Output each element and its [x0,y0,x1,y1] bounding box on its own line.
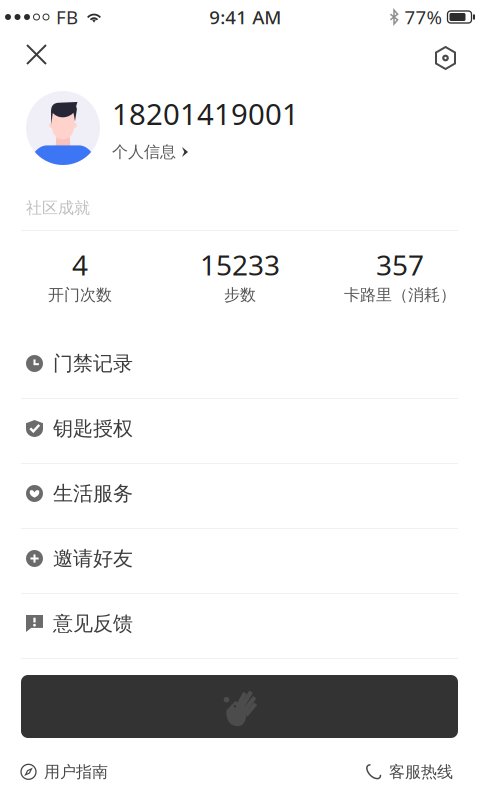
staticText: 357 [376,246,424,283]
staticText: 4 [72,246,88,283]
staticText: 个人信息 [112,142,176,162]
staticText: 生活服务 [53,481,133,506]
staticText: 门禁记录 [53,351,133,376]
button[interactable]: Settings [424,35,467,81]
staticText: 卡路里（消耗） [344,285,456,305]
staticText: 18201419001 [112,94,299,133]
staticText: 开门次数 [48,285,112,305]
button[interactable]: 18201419001 [26,89,480,167]
button[interactable]: 生活服务 [0,463,480,524]
staticText: 社区成就 [26,198,90,218]
staticText: 客服热线 [389,762,453,782]
button[interactable]: 用户指南 [17,752,112,792]
button[interactable]: 门禁记录 [0,333,480,394]
staticText: 邀请好友 [53,546,133,571]
staticText: FB [56,5,78,29]
staticText: 15233 [200,246,280,283]
staticText: 9:41 AM [209,5,281,29]
button[interactable]: 邀请好友 [0,528,480,589]
staticText: 用户指南 [44,762,108,782]
button[interactable]: 客服热线 [362,752,457,792]
staticText: 77% [404,5,442,29]
button[interactable]: Shake to open the door [21,675,458,738]
staticText: 意见反馈 [53,611,133,636]
button[interactable]: Close [15,33,58,76]
staticText: 步数 [224,285,256,305]
button[interactable]: 钥匙授权 [0,398,480,459]
staticText: 钥匙授权 [53,416,133,441]
button[interactable]: 意见反馈 [0,593,480,654]
